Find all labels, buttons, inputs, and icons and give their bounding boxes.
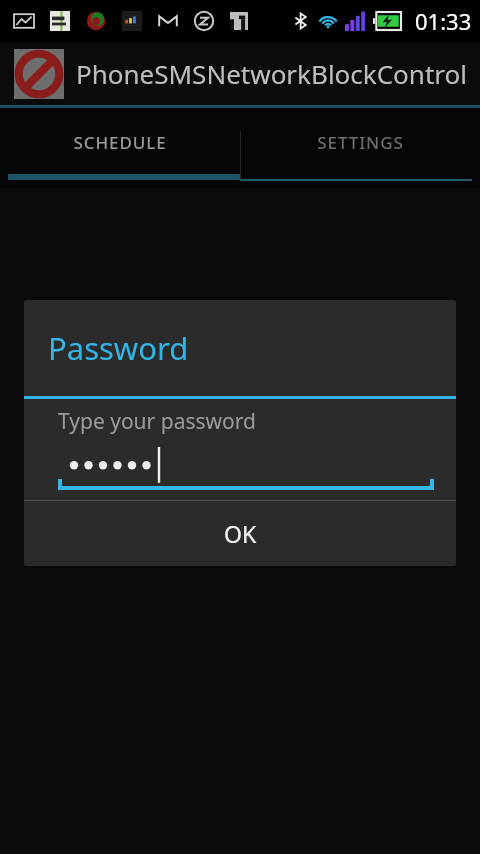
button[interactable]: OK [24,501,456,566]
staticText: SCHEDULE [73,131,167,154]
staticText: PhoneSMSNetworkBlockControl [76,56,467,91]
staticText: SETTINGS [317,131,404,154]
staticText: Type your password [58,407,256,436]
button[interactable] [58,446,434,492]
button[interactable]: SETTINGS [240,108,480,188]
other: App icon [14,49,64,99]
staticText: OK [224,518,257,549]
button[interactable]: SCHEDULE [0,108,240,188]
staticText: 01:33 [415,6,472,36]
staticText: Password [48,327,189,369]
